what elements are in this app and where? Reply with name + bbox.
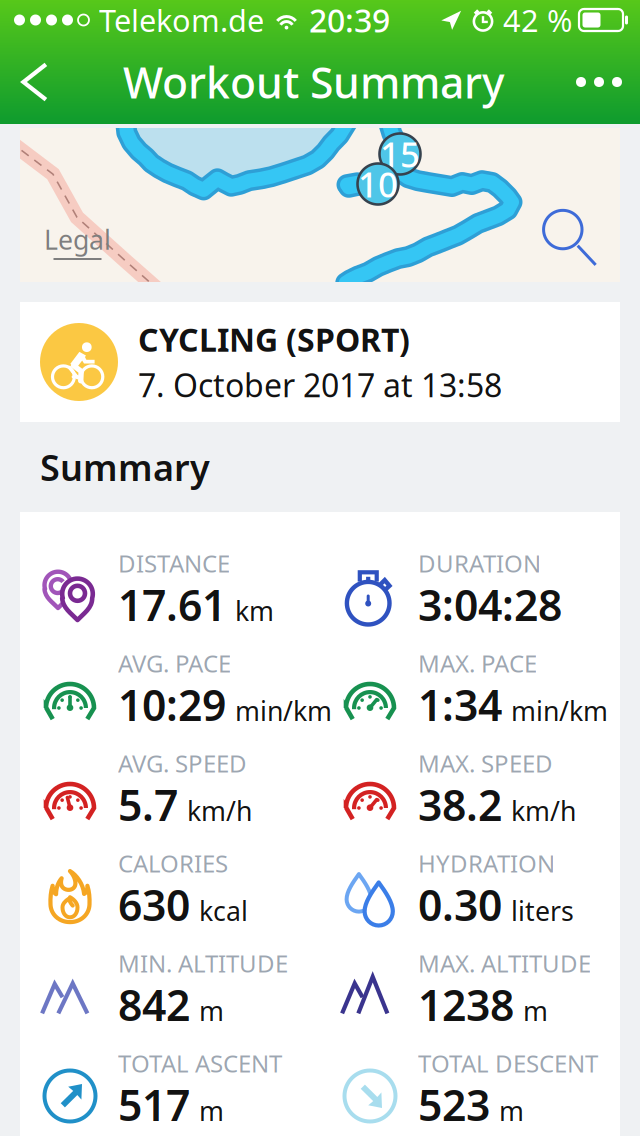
staticText: km xyxy=(235,593,274,628)
staticText: MAX. ALTITUDE xyxy=(418,947,591,979)
staticText: MIN. ALTITUDE xyxy=(118,947,288,979)
button[interactable]: More options xyxy=(558,57,640,107)
staticText: m xyxy=(199,1093,224,1128)
staticText: 517 xyxy=(118,1076,190,1133)
staticText: MAX. SPEED xyxy=(418,747,553,779)
staticText: AVG. SPEED xyxy=(118,747,247,779)
staticText: 5.7 xyxy=(118,776,178,833)
staticText: Workout Summary xyxy=(123,54,505,110)
staticText: Legal xyxy=(44,222,111,257)
staticText: 42 % xyxy=(503,0,572,40)
staticText: 842 xyxy=(118,976,190,1033)
button[interactable]: Back xyxy=(0,50,70,114)
staticText: HYDRATION xyxy=(418,847,555,879)
staticText: kcal xyxy=(199,893,248,928)
staticText: TOTAL ASCENT xyxy=(118,1047,282,1079)
staticText: min/km xyxy=(511,693,608,728)
staticText: DURATION xyxy=(418,547,541,579)
staticText: m xyxy=(199,993,224,1028)
staticText: Summary xyxy=(40,443,210,491)
staticText: AVG. PACE xyxy=(118,647,231,679)
staticText: CYCLING (SPORT) xyxy=(138,318,410,360)
staticText: 1238 xyxy=(418,976,514,1033)
staticText: 15 xyxy=(380,131,420,177)
button[interactable]: Zoom map xyxy=(538,206,620,282)
staticText: CALORIES xyxy=(118,847,228,879)
staticText: liters xyxy=(511,893,574,928)
staticText: 20:39 xyxy=(309,0,390,41)
staticText: km/h xyxy=(511,793,576,828)
staticText: m xyxy=(523,993,548,1028)
staticText: 0.30 xyxy=(418,876,502,933)
staticText: Telekom.de xyxy=(99,0,264,40)
staticText: 10 xyxy=(358,161,398,207)
staticText: 1:34 xyxy=(418,676,502,733)
staticText: DISTANCE xyxy=(118,547,230,579)
staticText: km/h xyxy=(187,793,252,828)
staticText: 10:29 xyxy=(118,676,226,733)
staticText: 630 xyxy=(118,876,190,933)
staticText: min/km xyxy=(235,693,332,728)
staticText: 523 xyxy=(418,1076,490,1133)
staticText: MAX. PACE xyxy=(418,647,537,679)
staticText: m xyxy=(499,1093,524,1128)
staticText: 7. October 2017 at 13:58 xyxy=(138,363,502,406)
staticText: 17.61 xyxy=(118,576,226,633)
button[interactable]: Legal xyxy=(20,222,111,282)
staticText: 3:04:28 xyxy=(418,576,562,633)
staticText: 38.2 xyxy=(418,776,502,833)
staticText: TOTAL DESCENT xyxy=(418,1047,598,1079)
